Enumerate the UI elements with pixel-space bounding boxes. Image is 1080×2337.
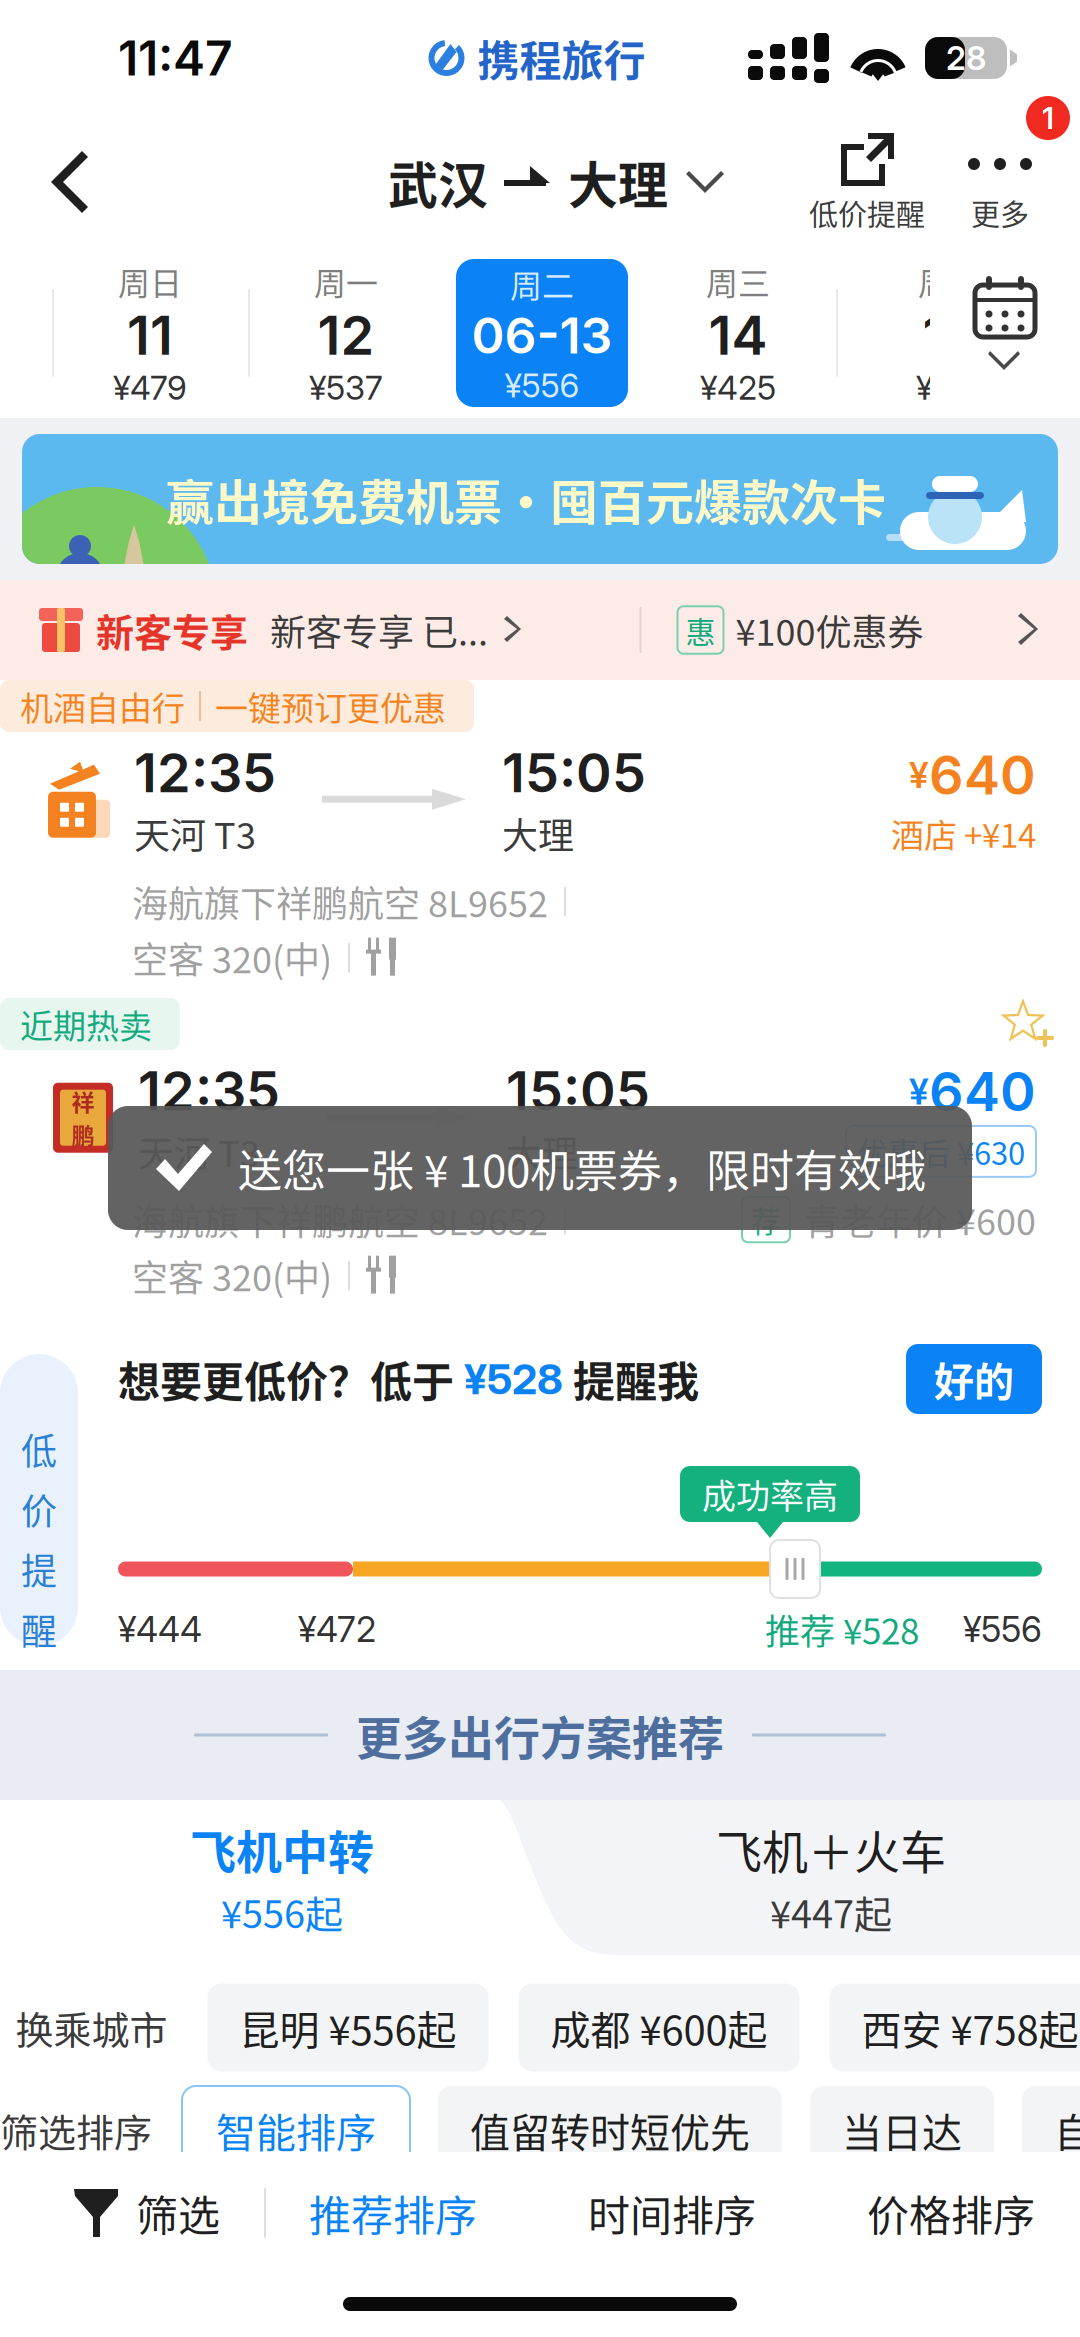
staticText: 周三 xyxy=(706,258,770,304)
staticText: 640 xyxy=(929,742,1036,807)
button[interactable]: 周三 xyxy=(640,248,836,418)
button[interactable]: More coupons xyxy=(1018,612,1080,648)
button[interactable]: 赢出境免费机票·囤百元爆款次卡 xyxy=(0,434,1080,564)
staticText: 筛选 xyxy=(136,2183,220,2243)
staticText: 近期热卖 xyxy=(20,1000,152,1048)
staticText: ¥537 xyxy=(309,368,383,408)
button[interactable]: 值留转时短优先 xyxy=(438,2086,782,2174)
staticText: 时间排序 xyxy=(588,2183,756,2243)
staticText: 机酒自由行 xyxy=(20,682,185,730)
staticText: 醒 xyxy=(21,1603,57,1655)
staticText: 28 xyxy=(946,38,986,78)
button[interactable]: 更多 xyxy=(942,122,1058,242)
staticText: 海航旗下祥鹏航空 8L9652 xyxy=(132,875,548,928)
staticText: 换乘城市 xyxy=(15,2000,167,2055)
staticText: 11:47 xyxy=(118,29,233,87)
staticText: 智能排序 xyxy=(216,2101,376,2159)
button[interactable]: 武汉 xyxy=(388,146,726,218)
staticText: 青老年价 ¥600 xyxy=(804,1193,1036,1246)
staticText: 大理 xyxy=(502,807,574,859)
staticText: 12:35 xyxy=(138,1058,280,1123)
button[interactable]: 周一 xyxy=(248,248,444,418)
button[interactable]: 新客专享 xyxy=(0,602,523,657)
button[interactable]: 周日 xyxy=(52,248,248,418)
button[interactable]: 周 xyxy=(836,248,1032,418)
staticText: 1 xyxy=(922,302,945,368)
staticText: 价 xyxy=(21,1483,57,1535)
staticText: 一键预订更优惠 xyxy=(215,682,446,730)
staticText: 飞机＋火车 xyxy=(716,1816,946,1882)
button[interactable]: 自 xyxy=(1022,2086,1080,2174)
button[interactable]: 当日达 xyxy=(810,2086,994,2174)
staticText: 空客 320(中) xyxy=(132,932,332,984)
staticText: ¥447起 xyxy=(770,1884,892,1939)
staticText: 15:05 xyxy=(502,740,646,805)
staticText: ¥528 xyxy=(464,1354,563,1404)
staticText: 武汉 xyxy=(388,146,488,218)
staticText: 好的 xyxy=(934,1350,1014,1408)
staticText: ¥ xyxy=(909,753,929,797)
staticText: 06-13 xyxy=(471,305,612,365)
button[interactable]: 飞机中转 xyxy=(0,1800,540,1955)
staticText: 更多 xyxy=(971,192,1029,234)
staticText: 天河 T3 xyxy=(134,807,256,859)
staticText: 14 xyxy=(708,302,767,368)
button[interactable]: 智能排序 xyxy=(182,2086,410,2174)
staticText: 1 xyxy=(1042,100,1054,136)
staticText: ¥472 xyxy=(298,1608,376,1650)
button[interactable]: 价格排序 xyxy=(846,2152,1056,2274)
staticText: ¥444 xyxy=(118,1608,202,1650)
staticText: ¥5 xyxy=(916,368,952,408)
staticText: 15:05 xyxy=(506,1058,650,1123)
staticText: 自 xyxy=(1054,2101,1080,2159)
staticText: 西安 ¥758起 xyxy=(861,1998,1078,2056)
staticText: 周二 xyxy=(510,261,574,307)
button[interactable]: 机酒自由行 xyxy=(0,680,1080,998)
button[interactable]: 成都 ¥600起 xyxy=(518,1983,799,2071)
button[interactable]: 筛选 xyxy=(52,2152,242,2274)
button[interactable]: Back xyxy=(0,122,140,242)
staticText: 鹏 xyxy=(71,1118,94,1151)
staticText: 价格排序 xyxy=(867,2183,1035,2243)
staticText: ¥ xyxy=(909,1069,929,1113)
staticText: ¥425 xyxy=(700,368,776,408)
staticText: 空客 320(中) xyxy=(132,1250,332,1302)
staticText: 祥 xyxy=(71,1084,94,1118)
button[interactable]: 昆明 ¥556起 xyxy=(207,1983,488,2071)
staticText: 周 xyxy=(918,258,950,304)
staticText: 携程旅行 xyxy=(477,28,645,88)
button[interactable]: 时间排序 xyxy=(567,2152,777,2274)
staticText: 低价提醒 xyxy=(809,192,925,234)
staticText: ¥479 xyxy=(113,368,187,408)
button[interactable]: 近期热卖 xyxy=(0,998,1080,1310)
button[interactable]: 西安 ¥758起 xyxy=(829,1983,1080,2071)
staticText: 飞机中转 xyxy=(190,1816,374,1882)
staticText: 提 xyxy=(21,1543,57,1595)
staticText: 更多出行方案推荐 xyxy=(356,1702,724,1768)
staticText: 推荐 ¥528 xyxy=(765,1604,919,1655)
staticText: 推荐排序 xyxy=(309,2183,477,2243)
staticText: 筛选排序 xyxy=(0,2102,152,2157)
staticText: 成都 ¥600起 xyxy=(550,1998,767,2056)
staticText: ¥556 xyxy=(963,1608,1042,1650)
staticText: 惠 xyxy=(685,608,715,652)
staticText: 荐 xyxy=(751,1198,781,1241)
button[interactable]: 好的 xyxy=(906,1344,1042,1414)
staticText: 酒店 +¥14 xyxy=(891,809,1036,857)
staticText: 海航旗下祥鹏航空 8L9652 xyxy=(132,1193,548,1246)
staticText: 送您一张 ¥ 100机票券，限时有效哦 xyxy=(238,1136,926,1200)
staticText: 成功率高 xyxy=(702,1469,838,1519)
staticText: 周一 xyxy=(314,258,378,304)
button[interactable]: 惠 xyxy=(677,604,923,656)
staticText: 天河 T3 xyxy=(138,1125,260,1177)
staticText: 提醒我 xyxy=(563,1349,699,1409)
button[interactable]: 推荐排序 xyxy=(288,2152,498,2274)
button[interactable]: 飞机＋火车 xyxy=(0,1800,1080,1955)
staticText: 大理 xyxy=(568,146,668,218)
button[interactable]: Calendar xyxy=(930,248,1080,418)
staticText: 周日 xyxy=(118,258,182,304)
staticText: 昆明 ¥556起 xyxy=(239,1998,456,2056)
staticText: 优惠后 ¥630 xyxy=(857,1129,1025,1174)
button[interactable]: 低价提醒 xyxy=(792,122,942,242)
button[interactable]: 周二 xyxy=(444,248,640,418)
